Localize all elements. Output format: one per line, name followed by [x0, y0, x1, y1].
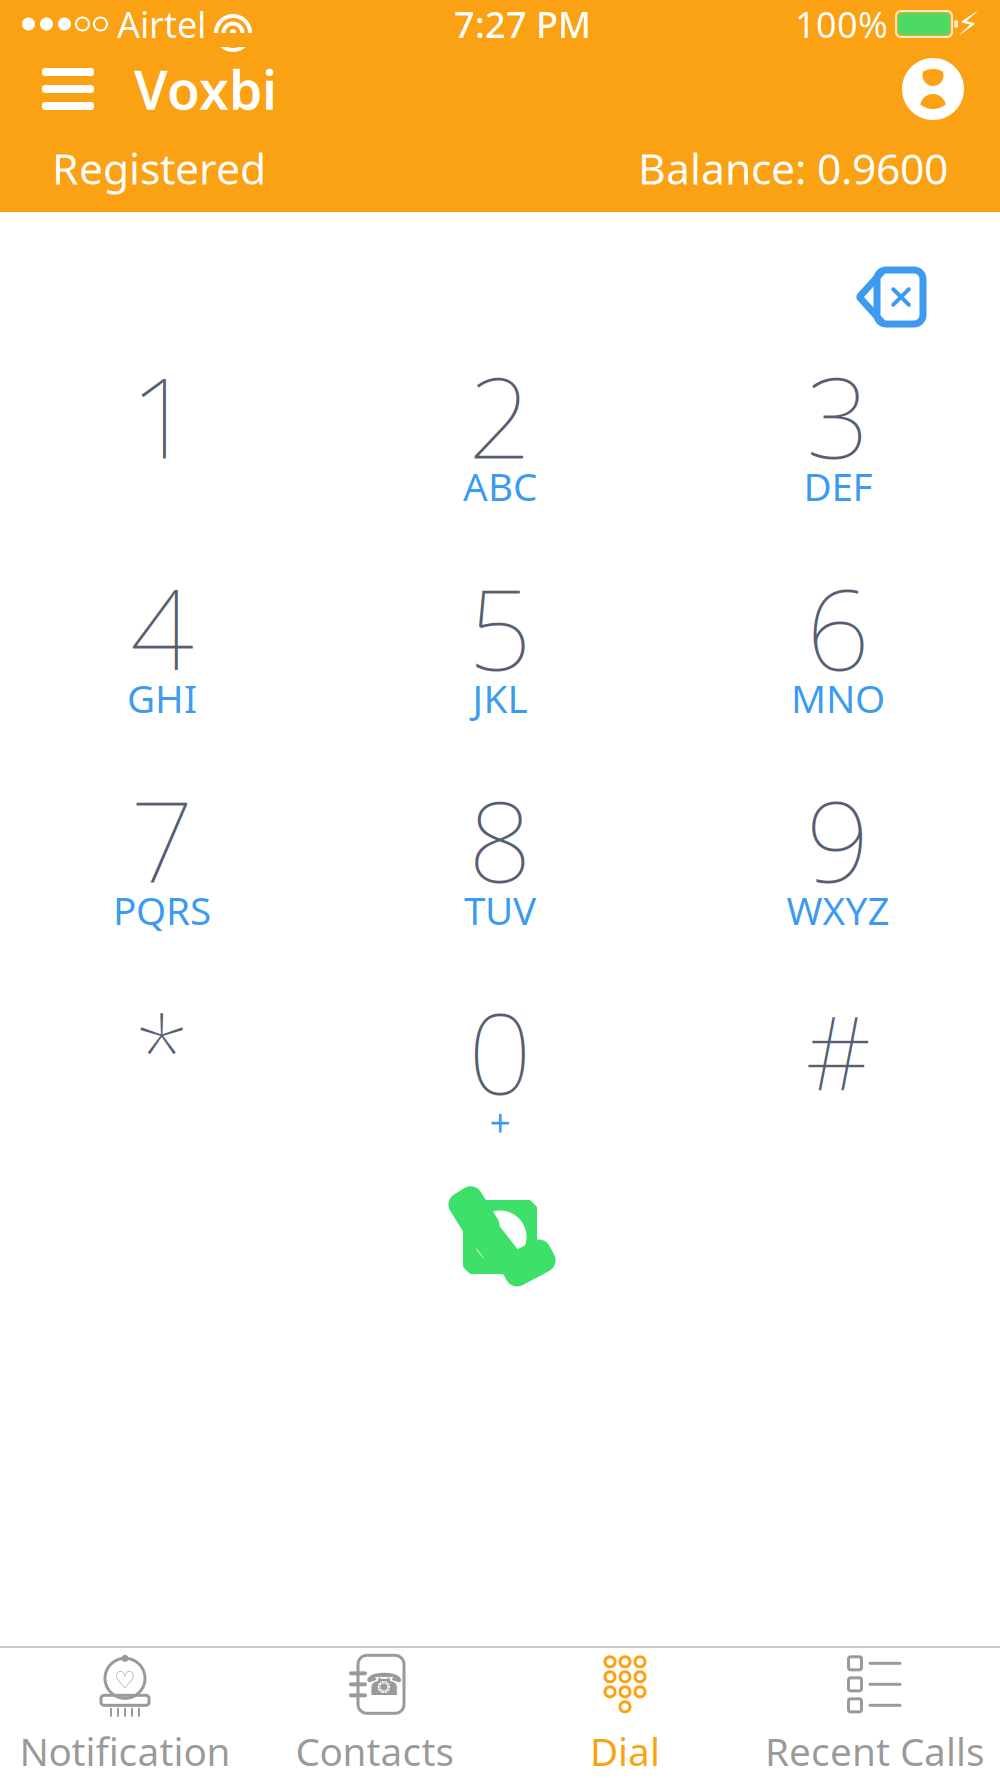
staticText: ♡ [114, 1667, 136, 1694]
button[interactable]: Dial [500, 1648, 750, 1778]
staticText: Balance: 0.9600 [638, 140, 948, 196]
button[interactable]: * [22, 990, 302, 1150]
staticText: Contacts [295, 1725, 454, 1777]
staticText: Dial [590, 1725, 660, 1777]
button[interactable]: 5 [360, 566, 640, 726]
button[interactable]: ♡ [0, 1648, 250, 1778]
button[interactable]: 9 [698, 778, 978, 938]
staticText: Notification [19, 1725, 230, 1777]
staticText: 100% [795, 0, 888, 48]
staticText: ⚡︎ [957, 6, 979, 42]
staticText: # [805, 984, 870, 1118]
button[interactable]: 6 [698, 566, 978, 726]
staticText: 0 [468, 977, 532, 1125]
button[interactable]: 8 [360, 778, 640, 938]
staticText: DEF [803, 460, 872, 512]
button[interactable]: Menu [30, 56, 106, 122]
button[interactable]: # [698, 990, 978, 1150]
staticText: TUV [464, 884, 536, 936]
staticText: JKL [472, 672, 527, 724]
staticText: Recent Calls [765, 1725, 985, 1777]
staticText: 1 [130, 341, 194, 489]
button[interactable]: 3 [698, 354, 978, 514]
button[interactable]: 7 [22, 778, 302, 938]
staticText: 7 [130, 765, 194, 913]
staticText: 5 [468, 553, 532, 701]
staticText: 8 [468, 765, 532, 913]
staticText: GHI [127, 672, 197, 724]
button[interactable]: 1 [22, 354, 302, 514]
button[interactable]: Call [425, 1172, 575, 1302]
button[interactable]: Recent Calls [750, 1648, 1000, 1778]
staticText: 3 [806, 341, 870, 489]
staticText: * [134, 984, 190, 1118]
staticText: 4 [130, 553, 194, 701]
staticText: ☎ [365, 1667, 403, 1702]
staticText: MNO [791, 672, 885, 724]
staticText: WXYZ [786, 884, 889, 936]
staticText: 7:27 PM [454, 0, 591, 48]
staticText: Voxbi [134, 54, 277, 124]
button[interactable]: Profile [896, 52, 970, 126]
staticText: 6 [806, 553, 870, 701]
staticText: Registered [52, 140, 266, 196]
button[interactable]: 2 [360, 354, 640, 514]
staticText: + [489, 1097, 510, 1147]
staticText: 9 [806, 765, 870, 913]
staticText: PQRS [113, 884, 211, 936]
button[interactable]: 4 [22, 566, 302, 726]
staticText: ABC [463, 460, 537, 512]
staticText: Airtel [117, 0, 206, 48]
button[interactable]: ☎ [250, 1648, 500, 1778]
button[interactable]: Delete [828, 254, 948, 340]
button[interactable]: 0 [360, 990, 640, 1150]
staticText: 2 [468, 341, 532, 489]
